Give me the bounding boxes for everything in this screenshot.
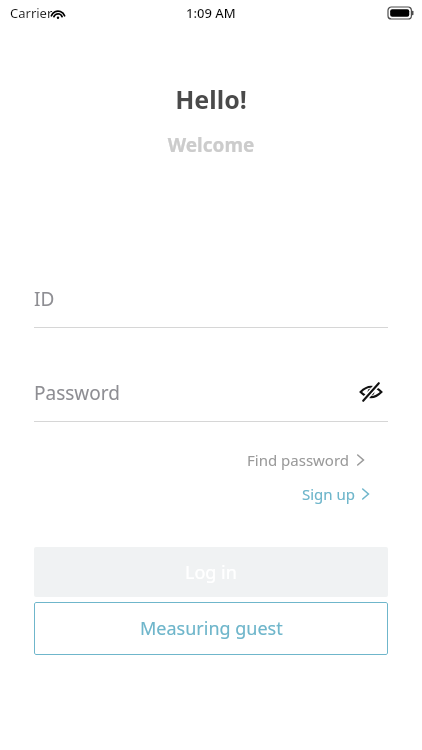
button[interactable]: Password <box>34 372 388 422</box>
button[interactable]: Sign up <box>298 481 373 507</box>
staticText: Carrier <box>10 4 53 22</box>
staticText: Password <box>34 380 120 406</box>
button[interactable]: ID <box>34 278 388 328</box>
button[interactable]: Show password <box>354 375 388 409</box>
staticText: Log in <box>185 560 237 585</box>
staticText: ID <box>34 286 55 312</box>
staticText: Measuring guest <box>140 616 283 641</box>
staticText: Hello! <box>0 82 422 116</box>
staticText: Sign up <box>302 484 355 504</box>
button[interactable]: Measuring guest <box>34 602 388 655</box>
button[interactable]: Find password <box>243 447 368 473</box>
staticText: Find password <box>247 450 350 470</box>
staticText: 1:09 AM <box>186 4 236 22</box>
staticText: Welcome <box>0 132 422 158</box>
